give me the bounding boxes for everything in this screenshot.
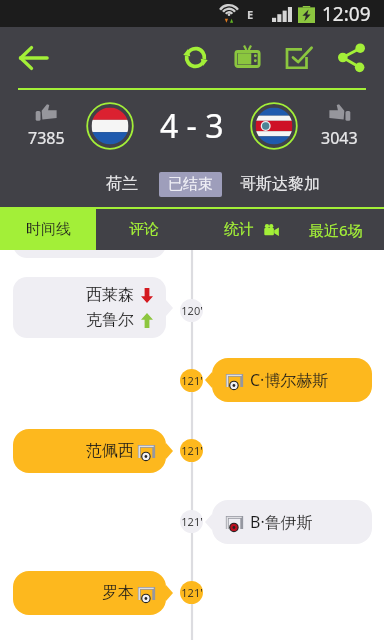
button[interactable]: 时间线 <box>0 209 96 250</box>
staticText: 121' <box>181 585 203 600</box>
staticText: C·博尔赫斯 <box>250 369 329 391</box>
button[interactable]: B·鲁伊斯 <box>212 500 372 544</box>
staticText: 3043 <box>321 127 358 149</box>
staticText: 荷兰 <box>106 174 138 194</box>
button[interactable]: 评论 <box>96 209 192 250</box>
button[interactable]: Select <box>273 27 325 88</box>
button[interactable]: 统计 <box>192 209 288 250</box>
staticText: 克鲁尔 <box>86 310 134 330</box>
button[interactable]: Back <box>0 27 66 88</box>
button[interactable]: Support away team <box>317 103 361 149</box>
button[interactable]: Live TV <box>221 27 273 88</box>
button[interactable]: Refresh <box>170 27 221 88</box>
button[interactable] <box>13 250 166 258</box>
staticText: 12:09 <box>322 1 371 27</box>
staticText: 范佩西 <box>86 441 134 461</box>
staticText: 120' <box>181 303 203 318</box>
staticText: 哥斯达黎加 <box>240 174 320 194</box>
button[interactable]: C·博尔赫斯 <box>212 358 372 402</box>
staticText: 评论 <box>129 220 159 239</box>
staticText: 最近6场 <box>309 220 363 240</box>
staticText: 西莱森 <box>86 285 134 305</box>
staticText: 121' <box>181 443 203 458</box>
staticText: 7385 <box>28 127 65 149</box>
staticText: E <box>247 7 254 22</box>
staticText: 统计 <box>224 220 254 239</box>
button[interactable]: 罗本 <box>13 571 166 615</box>
staticText: 121' <box>181 373 203 388</box>
staticText: 4 - 3 <box>160 104 224 148</box>
staticText: 罗本 <box>102 583 134 603</box>
button[interactable]: 西莱森 <box>13 277 166 338</box>
staticText: 121' <box>181 514 203 529</box>
staticText: B·鲁伊斯 <box>250 511 313 533</box>
button[interactable]: 最近6场 <box>288 209 384 250</box>
staticText: 已结束 <box>168 175 213 194</box>
button[interactable]: Share <box>325 27 378 88</box>
staticText: 时间线 <box>26 220 71 239</box>
button[interactable]: Support home team <box>25 103 67 149</box>
button[interactable]: 范佩西 <box>13 429 166 473</box>
